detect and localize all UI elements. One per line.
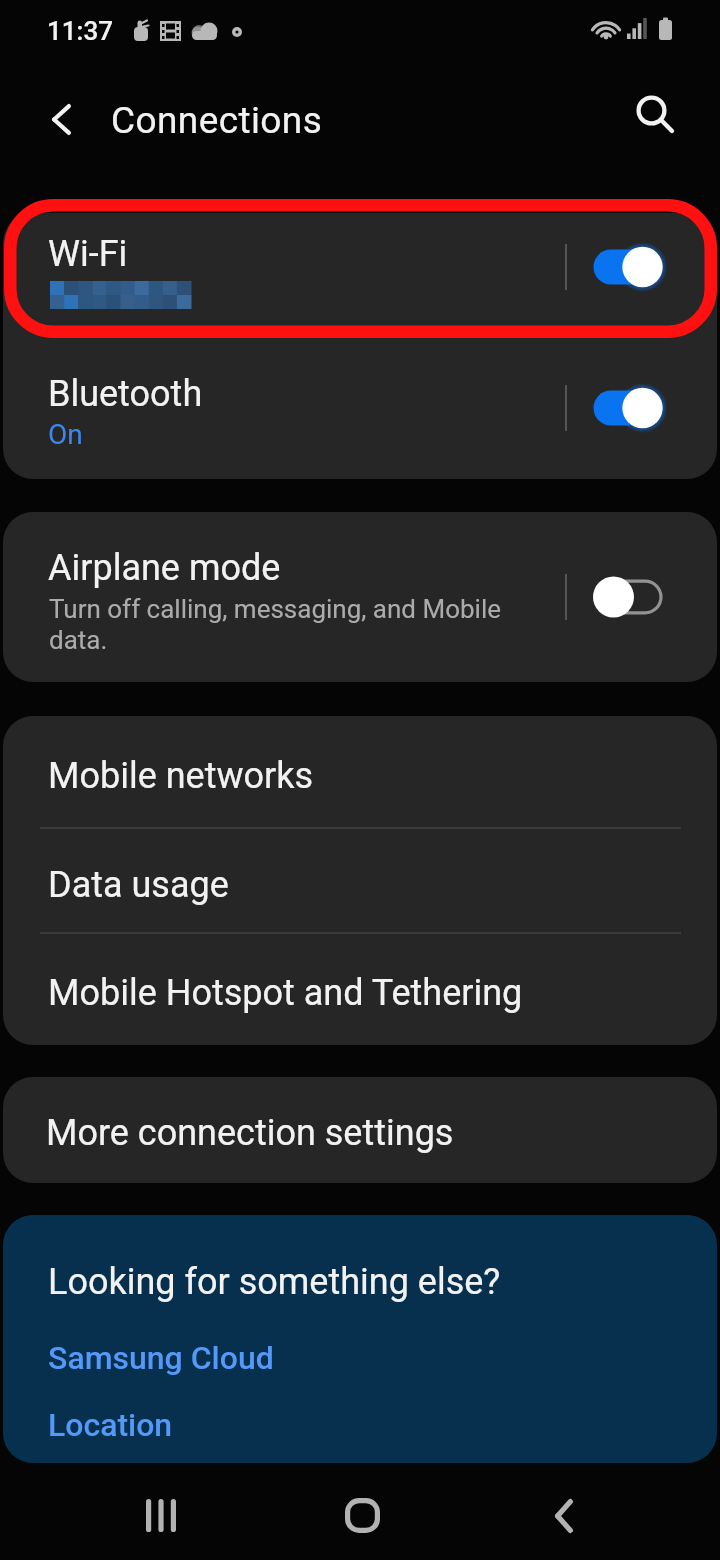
staticText: Turn off calling, messaging, and Mobile … xyxy=(49,593,515,655)
button[interactable]: Airplane mode xyxy=(3,512,717,682)
staticText: Bluetooth xyxy=(48,373,203,415)
staticText: Connections xyxy=(111,99,323,142)
button[interactable]: Navigate up xyxy=(30,86,94,150)
button[interactable]: Back xyxy=(504,1463,624,1560)
staticText: 11:37 xyxy=(47,16,113,46)
button[interactable]: Airplane mode off xyxy=(592,575,664,619)
button[interactable]: Location xyxy=(43,1402,178,1448)
staticText: Data usage xyxy=(48,864,229,906)
staticText: On xyxy=(48,418,83,451)
staticText: Location xyxy=(48,1406,173,1444)
staticText: Looking for something else? xyxy=(48,1261,501,1303)
staticText: Wi-Fi xyxy=(48,233,128,275)
button[interactable]: Mobile Hotspot and Tethering xyxy=(3,933,717,1045)
button[interactable]: Wi-Fi xyxy=(3,213,717,353)
button[interactable]: More connection settings xyxy=(3,1077,717,1183)
button[interactable]: Search xyxy=(621,83,685,147)
button[interactable]: Data usage xyxy=(3,828,717,933)
staticText: Samsung Cloud xyxy=(48,1339,274,1377)
staticText: Mobile Hotspot and Tethering xyxy=(48,972,523,1014)
button[interactable]: Wi-Fi on xyxy=(592,245,664,289)
staticText: More connection settings xyxy=(46,1112,454,1154)
button[interactable]: Recent apps xyxy=(101,1463,221,1560)
staticText: Mobile networks xyxy=(48,755,314,797)
button[interactable]: Samsung Cloud xyxy=(43,1335,279,1381)
button[interactable]: Home xyxy=(302,1463,422,1560)
button[interactable]: Mobile networks xyxy=(3,716,717,828)
staticText: Airplane mode xyxy=(48,547,281,589)
button[interactable]: Bluetooth on xyxy=(592,386,664,430)
button[interactable]: Bluetooth xyxy=(3,353,717,479)
